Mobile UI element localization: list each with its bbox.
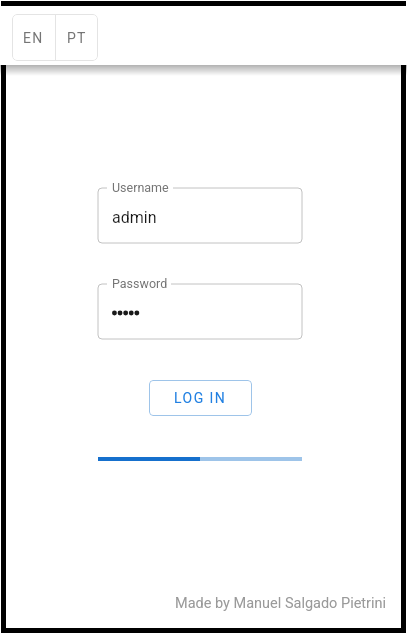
button[interactable]: LOG IN — [149, 380, 252, 416]
staticText: LOG IN — [174, 390, 227, 406]
staticText: EN — [23, 30, 44, 46]
staticText: PT — [67, 30, 87, 46]
staticText: Password — [112, 276, 168, 291]
button[interactable]: Password field — [98, 284, 302, 339]
button[interactable]: Switch language to EN — [12, 14, 55, 61]
staticText: Username — [112, 180, 169, 195]
button[interactable]: Username field — [98, 188, 302, 243]
button[interactable]: Switch language to PT — [56, 14, 98, 61]
staticText: Made by Manuel Salgado Pietrini — [175, 595, 387, 612]
staticText: admin — [112, 208, 157, 227]
